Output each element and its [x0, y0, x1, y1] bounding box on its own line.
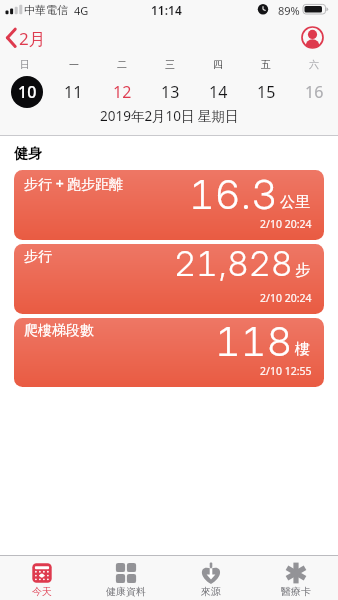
staticText: 2/10 20:24 — [260, 291, 312, 305]
button[interactable]: 爬樓梯段數 — [14, 318, 324, 387]
staticText: 日 — [20, 58, 30, 71]
staticText: 11:14 — [151, 2, 182, 18]
button[interactable]: 2月 — [2, 24, 62, 52]
staticText: 今天 — [32, 585, 52, 598]
staticText: 四 — [213, 58, 223, 71]
button[interactable]: 10 — [0, 80, 49, 104]
staticText: 樓 — [295, 340, 310, 359]
button[interactable]: 步行 + 跑步距離 — [14, 170, 324, 240]
staticText: 二 — [117, 58, 127, 71]
staticText: 六 — [309, 58, 319, 71]
button[interactable]: 來源 — [168, 556, 253, 600]
staticText: 4G — [74, 3, 89, 18]
staticText: 15 — [257, 81, 276, 103]
button[interactable]: 健康資料 — [84, 556, 168, 600]
staticText: 10 — [18, 81, 37, 103]
button[interactable]: 步行 — [14, 244, 324, 314]
button[interactable]: 醫療卡 — [253, 556, 338, 600]
staticText: 健身 — [14, 145, 42, 163]
button[interactable]: 12 — [98, 80, 146, 104]
staticText: 12 — [113, 81, 132, 103]
staticText: 步行 + 跑步距離 — [24, 174, 124, 193]
staticText: 89% — [278, 3, 300, 18]
staticText: 醫療卡 — [281, 585, 311, 598]
staticText: 中華電信 — [24, 3, 68, 17]
staticText: 步行 — [24, 248, 52, 266]
staticText: 14 — [209, 81, 228, 103]
button[interactable]: 14 — [194, 80, 242, 104]
button[interactable]: 13 — [146, 80, 194, 104]
staticText: 爬樓梯段數 — [24, 322, 94, 340]
staticText: 2月 — [19, 27, 46, 50]
button[interactable]: 15 — [242, 80, 290, 104]
staticText: 步 — [295, 261, 310, 280]
staticText: 五 — [261, 58, 271, 71]
staticText: 2019年2月10日 星期日 — [100, 107, 239, 125]
staticText: 健康資料 — [106, 585, 146, 598]
staticText: 16.3 — [189, 170, 278, 218]
staticText: 13 — [161, 81, 180, 103]
staticText: 公里 — [280, 193, 310, 212]
staticText: 21,828 — [174, 244, 293, 284]
staticText: 16 — [305, 81, 324, 103]
button[interactable]: 今天 — [0, 556, 84, 600]
button[interactable]: 11 — [49, 80, 98, 104]
staticText: 來源 — [201, 585, 221, 598]
button[interactable] — [300, 25, 325, 50]
staticText: 三 — [165, 58, 175, 71]
staticText: 11 — [64, 81, 83, 103]
staticText: 118 — [215, 318, 293, 365]
button[interactable]: 16 — [290, 80, 338, 104]
staticText: 一 — [69, 58, 79, 71]
staticText: 2/10 12:55 — [260, 364, 312, 378]
staticText: 2/10 20:24 — [260, 217, 312, 231]
